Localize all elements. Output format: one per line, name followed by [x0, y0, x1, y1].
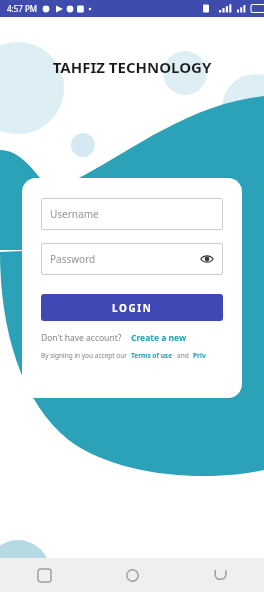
staticText: TAHFIZ TECHNOLOGY [0, 57, 264, 77]
staticText: Password [50, 252, 96, 266]
button[interactable]: Back [176, 558, 264, 592]
button[interactable]: Priv [193, 351, 206, 360]
staticText: Terms of use [131, 351, 173, 360]
staticText: and [177, 351, 189, 360]
button[interactable]: Recents [0, 558, 88, 592]
staticText: LOGIN [112, 301, 153, 315]
button[interactable]: Show password [199, 251, 215, 267]
button[interactable]: Username [41, 198, 223, 230]
button[interactable]: LOGIN [41, 294, 223, 321]
staticText: Priv [193, 351, 206, 360]
button[interactable]: Terms of use [131, 351, 173, 360]
staticText: Don't have account? [41, 332, 122, 344]
staticText: 4:57 PM [7, 3, 38, 14]
staticText: Username [50, 207, 99, 221]
button[interactable]: Password [41, 243, 223, 275]
staticText: Create a new [131, 332, 187, 344]
staticText: By signing in you accept our [41, 351, 127, 360]
button[interactable]: Home [88, 558, 176, 592]
button[interactable]: Create a new [131, 332, 187, 344]
